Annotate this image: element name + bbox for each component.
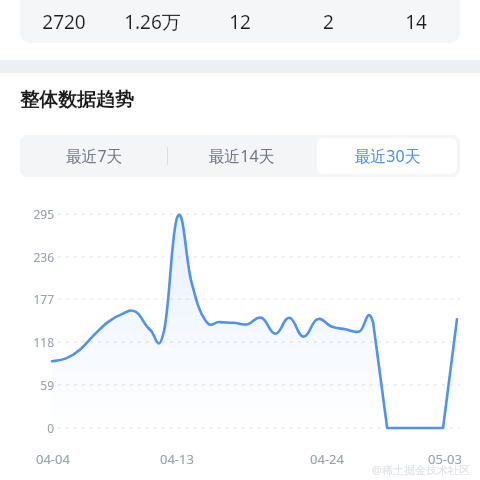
button[interactable]: 2720 [20, 0, 460, 43]
button[interactable]: 最近14天 [171, 138, 311, 174]
staticText: 236 [33, 249, 54, 265]
staticText: 1.26万 [124, 9, 181, 35]
staticText: 2720 [42, 9, 86, 35]
staticText: 05-03 [428, 450, 462, 468]
staticText: 04-13 [160, 450, 194, 468]
staticText: @稀土掘金技术社区 [372, 462, 470, 477]
staticText: 295 [33, 206, 54, 222]
button[interactable]: 最近30天 [317, 138, 457, 174]
staticText: 59 [40, 377, 54, 393]
button[interactable]: 最近7天 [23, 138, 164, 174]
staticText: 最近7天 [65, 145, 123, 167]
staticText: 177 [33, 291, 54, 307]
staticText: 04-04 [36, 450, 70, 468]
staticText: 0 [47, 420, 54, 436]
staticText: 118 [33, 334, 54, 350]
staticText: 整体数据趋势 [20, 88, 134, 112]
staticText: 最近14天 [208, 145, 275, 167]
staticText: 04-24 [310, 450, 344, 468]
staticText: 最近30天 [354, 145, 421, 167]
staticText: 14 [405, 9, 427, 35]
staticText: 2 [323, 9, 334, 35]
staticText: 12 [229, 9, 251, 35]
